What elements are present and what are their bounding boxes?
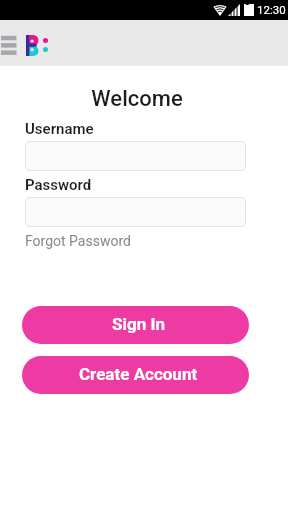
button[interactable]: Create Account: [22, 356, 249, 394]
staticText: Password: [25, 176, 92, 194]
staticText: 12:30: [257, 3, 286, 16]
staticText: Sign In: [112, 314, 165, 334]
button[interactable]: Forgot Password: [25, 233, 131, 249]
button[interactable]: [25, 141, 246, 171]
button[interactable]: Sign In: [22, 306, 249, 344]
staticText: Welcome: [0, 86, 274, 112]
other: App logo: [26, 35, 39, 56]
staticText: Create Account: [79, 364, 198, 384]
button[interactable]: [25, 197, 246, 227]
staticText: Username: [25, 120, 94, 138]
button[interactable]: Open navigation menu: [0, 33, 18, 56]
